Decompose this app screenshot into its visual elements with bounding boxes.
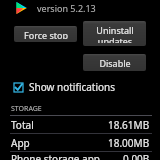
- button[interactable]: Total: [0, 116, 160, 133]
- button[interactable]: App: [0, 134, 160, 151]
- button[interactable]: Show notifications: [0, 79, 160, 95]
- staticText: Phone storage app: [11, 152, 100, 160]
- button[interactable]: Disable: [83, 54, 146, 71]
- staticText: Show notifications: [29, 80, 116, 94]
- button[interactable]: Phone storage app: [0, 152, 160, 160]
- staticText: Uninstall updates: [96, 24, 134, 43]
- button[interactable]: Uninstall updates: [83, 21, 146, 46]
- button[interactable]: Force stop: [14, 26, 77, 42]
- staticText: STORAGE: [11, 104, 42, 114]
- staticText: 0.00B: [123, 152, 150, 160]
- staticText: 18.00MB: [108, 136, 150, 150]
- staticText: Disable: [99, 57, 131, 68]
- staticText: Force stop: [24, 29, 68, 39]
- staticText: 18.61MB: [108, 118, 150, 132]
- staticText: App: [11, 136, 30, 150]
- staticText: Total: [11, 118, 34, 132]
- staticText: version 5.2.13: [37, 2, 96, 14]
